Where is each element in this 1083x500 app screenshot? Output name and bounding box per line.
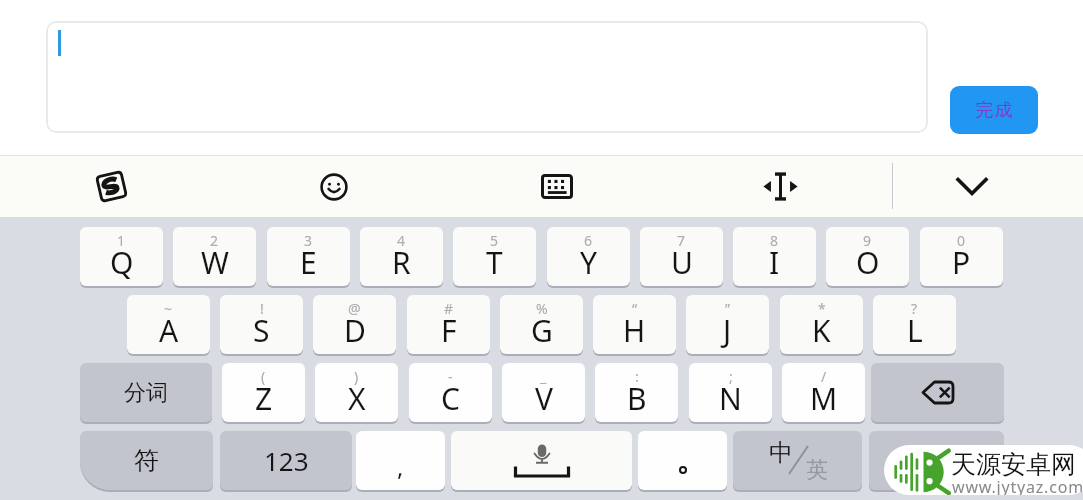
staticText: ;: [729, 367, 733, 386]
staticText: 7: [677, 231, 686, 250]
button[interactable]: 3: [267, 227, 350, 289]
button[interactable]: Hide keyboard: [948, 171, 996, 202]
staticText: T: [486, 242, 503, 283]
staticText: ,: [397, 450, 404, 483]
staticText: *: [818, 299, 826, 318]
staticText: 2: [210, 231, 219, 250]
staticText: 6: [584, 231, 593, 250]
button[interactable]: /: [782, 363, 865, 425]
staticText: (: [261, 367, 266, 386]
button[interactable]: :: [595, 363, 678, 425]
staticText: O: [856, 242, 880, 283]
staticText: D: [344, 310, 366, 351]
staticText: N: [719, 378, 742, 419]
button[interactable]: ”: [686, 295, 769, 357]
staticText: _: [540, 367, 547, 386]
staticText: 符: [134, 445, 159, 476]
button[interactable]: *: [780, 295, 863, 357]
staticText: 9: [863, 231, 872, 250]
staticText: W: [201, 242, 229, 283]
button[interactable]: 1: [80, 227, 163, 289]
button[interactable]: 9: [826, 227, 909, 289]
button[interactable]: Period: [638, 431, 727, 493]
button[interactable]: Chinese English toggle: [733, 431, 862, 493]
button[interactable]: Space: [451, 431, 632, 493]
button[interactable]: -: [409, 363, 492, 425]
staticText: S: [253, 310, 270, 351]
staticText: A: [159, 310, 179, 351]
staticText: C: [441, 378, 460, 419]
staticText: #: [444, 299, 454, 318]
staticText: G: [531, 310, 553, 351]
staticText: 8: [770, 231, 779, 250]
button[interactable]: 2: [173, 227, 256, 289]
button[interactable]: (: [222, 363, 305, 425]
staticText: J: [723, 310, 732, 351]
button[interactable]: ;: [689, 363, 772, 425]
button[interactable]: 6: [547, 227, 630, 289]
button[interactable]: Sogou input: [96, 171, 127, 202]
staticText: 5: [490, 231, 499, 250]
button[interactable]: #: [407, 295, 490, 357]
staticText: X: [348, 378, 366, 419]
staticText: ): [354, 367, 359, 386]
staticText: ”: [725, 299, 731, 318]
staticText: I: [769, 242, 780, 283]
staticText: 0: [957, 231, 966, 250]
button[interactable]: 完成: [950, 86, 1038, 134]
button[interactable]: 分词: [80, 363, 212, 425]
staticText: 英: [806, 456, 828, 484]
staticText: V: [535, 378, 553, 419]
staticText: Z: [255, 378, 273, 419]
button[interactable]: Backspace: [871, 363, 1004, 425]
button[interactable]: [46, 21, 928, 133]
staticText: 4: [397, 231, 406, 250]
staticText: 完成: [975, 99, 1013, 122]
staticText: R: [392, 242, 411, 283]
button[interactable]: 符: [80, 431, 213, 493]
button[interactable]: 5: [453, 227, 536, 289]
staticText: www.jytyaz.com: [952, 476, 1083, 495]
staticText: H: [623, 310, 646, 351]
button[interactable]: Emoji: [320, 173, 348, 201]
button[interactable]: 4: [360, 227, 443, 289]
staticText: /: [821, 367, 827, 386]
staticText: P: [952, 242, 971, 283]
staticText: 3: [304, 231, 313, 250]
staticText: Q: [110, 242, 134, 283]
staticText: M: [810, 378, 838, 419]
button[interactable]: @: [313, 295, 396, 357]
button[interactable]: ): [315, 363, 398, 425]
staticText: 123: [264, 443, 309, 478]
button[interactable]: “: [593, 295, 676, 357]
staticText: !: [260, 299, 264, 318]
staticText: :: [635, 367, 639, 386]
staticText: F: [441, 310, 457, 351]
staticText: U: [671, 242, 693, 283]
button[interactable]: ~: [127, 295, 210, 357]
staticText: 1: [117, 231, 126, 250]
staticText: 分词: [124, 379, 168, 407]
button[interactable]: ?: [873, 295, 956, 357]
button[interactable]: _: [502, 363, 585, 425]
button[interactable]: 8: [733, 227, 816, 289]
button[interactable]: Move cursor: [764, 173, 797, 200]
button[interactable]: %: [500, 295, 583, 357]
button[interactable]: 0: [920, 227, 1003, 289]
button[interactable]: Enter: [869, 431, 1004, 493]
staticText: %: [536, 299, 548, 318]
staticText: -: [448, 367, 453, 386]
staticText: E: [300, 242, 317, 283]
staticText: @: [348, 299, 361, 318]
staticText: 天源安卓网: [951, 449, 1076, 480]
button[interactable]: !: [220, 295, 303, 357]
staticText: L: [907, 310, 923, 351]
staticText: ?: [911, 299, 918, 318]
button[interactable]: 7: [640, 227, 723, 289]
button[interactable]: Comma: [356, 431, 445, 493]
button[interactable]: 123: [220, 431, 352, 493]
staticText: Y: [580, 242, 597, 283]
button[interactable]: Keyboard layout: [541, 174, 573, 199]
staticText: “: [632, 299, 638, 318]
staticText: ~: [164, 299, 173, 318]
